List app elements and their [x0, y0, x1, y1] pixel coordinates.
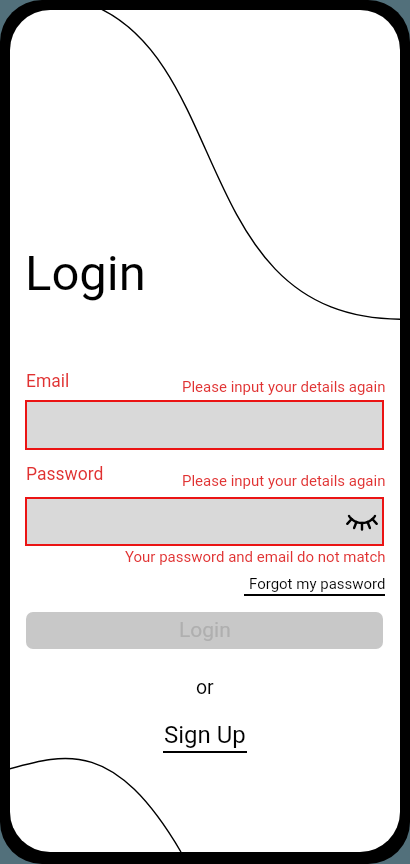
- staticText: Email: [26, 371, 70, 392]
- button[interactable]: [25, 497, 384, 546]
- staticText: Password: [26, 464, 104, 485]
- button[interactable]: [25, 400, 384, 450]
- button[interactable]: Login: [26, 612, 383, 649]
- staticText: Login: [25, 245, 146, 302]
- button[interactable]: Sign Up: [164, 721, 246, 749]
- staticText: or: [196, 676, 214, 699]
- button[interactable]: Forgot my password: [249, 575, 386, 593]
- staticText: Your password and email do not match: [125, 548, 386, 566]
- staticText: Please input your details again: [182, 378, 386, 396]
- staticText: Please input your details again: [182, 472, 386, 490]
- staticText: Login: [179, 618, 231, 643]
